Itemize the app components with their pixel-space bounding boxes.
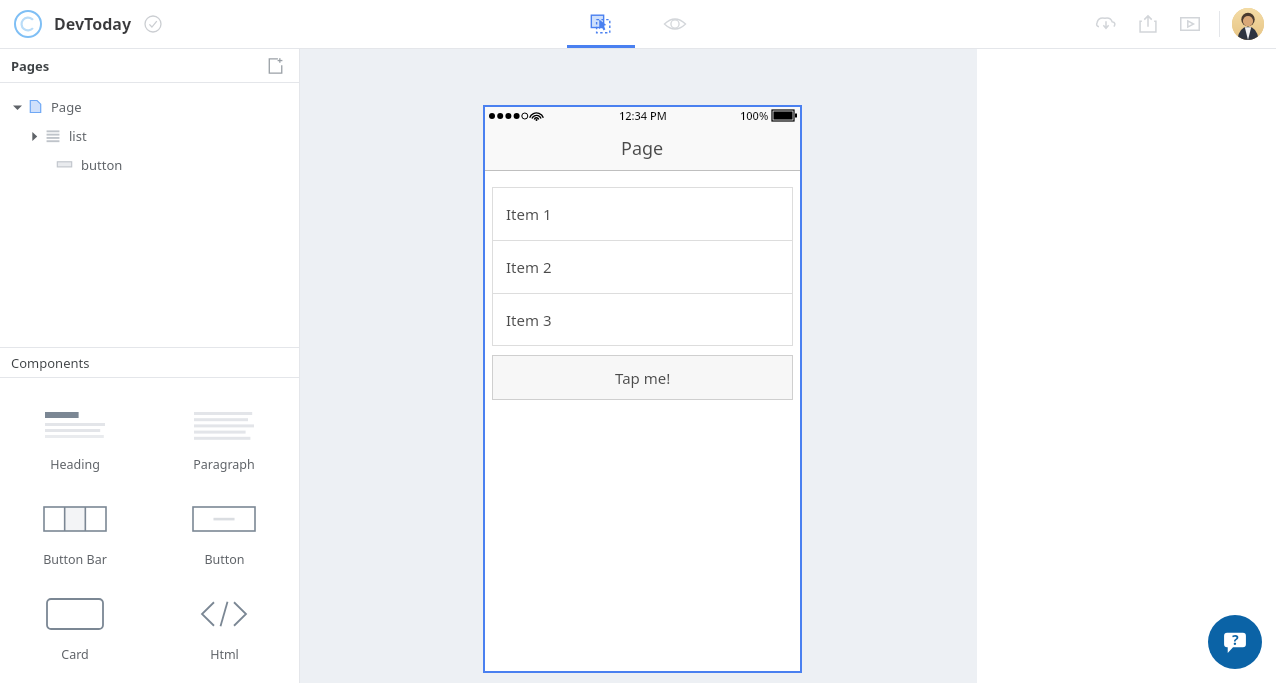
button[interactable]: Share bbox=[1131, 7, 1165, 41]
staticText: Html bbox=[210, 646, 239, 663]
staticText: Components bbox=[11, 354, 90, 372]
staticText: Page bbox=[51, 98, 82, 116]
button[interactable]: button bbox=[0, 150, 299, 179]
staticText: Pages bbox=[11, 57, 50, 75]
staticText: 100% bbox=[740, 108, 769, 123]
button[interactable]: Card bbox=[0, 596, 149, 663]
button[interactable]: Item 2 bbox=[492, 241, 793, 293]
button[interactable]: Paragraph bbox=[149, 406, 299, 473]
button[interactable]: Play bbox=[1173, 7, 1207, 41]
button[interactable]: Tap me! bbox=[492, 355, 793, 400]
button[interactable]: Heading bbox=[0, 406, 149, 473]
button[interactable]: Button bbox=[149, 501, 299, 568]
staticText: ? bbox=[1232, 630, 1239, 649]
button[interactable]: Add page bbox=[263, 53, 289, 79]
button[interactable]: Html bbox=[149, 596, 299, 663]
button[interactable]: Download bbox=[1089, 7, 1123, 41]
staticText: 12:34 PM bbox=[619, 108, 667, 123]
button[interactable]: Item 3 bbox=[492, 294, 793, 346]
staticText: Item 2 bbox=[506, 257, 552, 277]
button[interactable]: Page bbox=[0, 92, 299, 121]
staticText: Button bbox=[204, 551, 245, 568]
staticText: Heading bbox=[50, 456, 100, 473]
button[interactable]: list bbox=[0, 121, 299, 150]
button[interactable]: Help chat bbox=[1208, 615, 1262, 669]
staticText: Paragraph bbox=[193, 456, 255, 473]
button[interactable]: Account bbox=[1232, 8, 1264, 40]
staticText: Page bbox=[621, 136, 664, 161]
button[interactable]: Button Bar bbox=[0, 501, 149, 568]
button[interactable]: Design bbox=[567, 0, 635, 48]
button[interactable]: Preview bbox=[641, 0, 709, 48]
staticText: Item 1 bbox=[506, 204, 552, 224]
staticText: Button Bar bbox=[43, 551, 107, 568]
staticText: Item 3 bbox=[506, 310, 552, 330]
staticText: Card bbox=[61, 646, 89, 663]
button[interactable]: Item 1 bbox=[492, 187, 793, 240]
staticText: list bbox=[69, 127, 87, 145]
staticText: DevToday bbox=[54, 13, 132, 35]
staticText: button bbox=[81, 156, 123, 174]
staticText: Tap me! bbox=[615, 368, 671, 388]
